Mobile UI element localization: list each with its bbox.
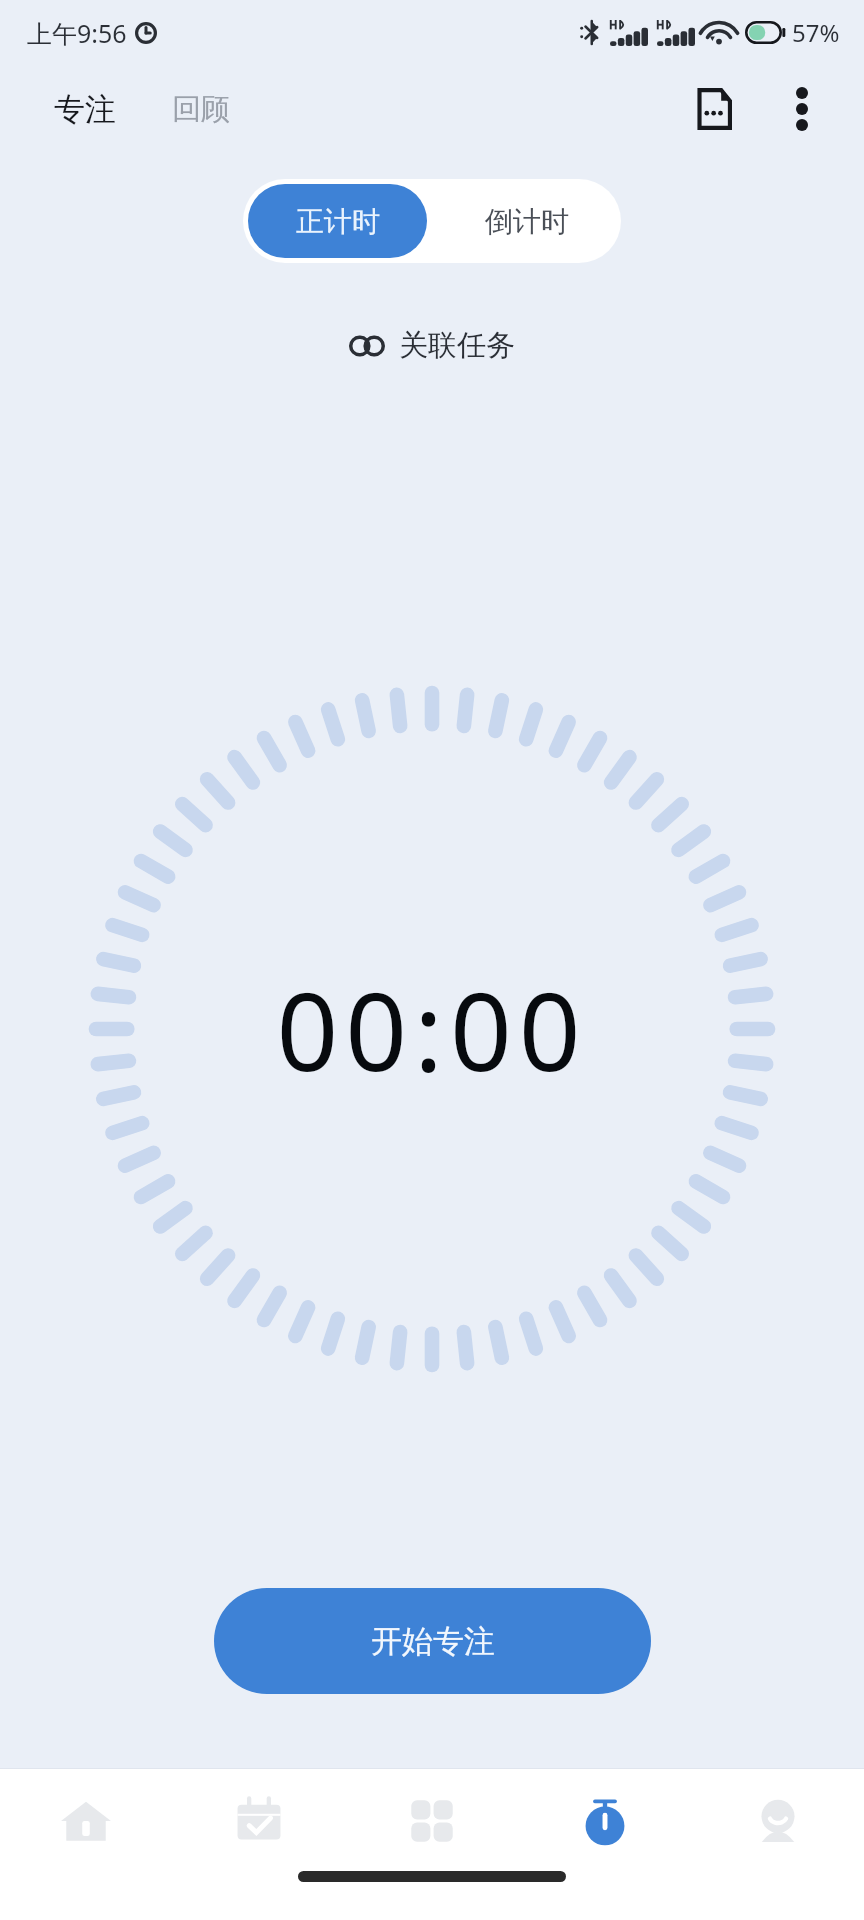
button[interactable]: Home [0,1769,172,1873]
button[interactable]: 开始专注 [214,1588,651,1694]
staticText: 倒计时 [485,204,569,239]
button[interactable]: Apps [345,1769,518,1873]
staticText: 关联任务 [399,327,515,364]
button[interactable]: Notes [682,77,746,141]
staticText: 专注 [54,90,116,129]
button[interactable]: 专注 [50,84,120,135]
staticText: 回顾 [172,91,230,128]
staticText: 正计时 [296,204,380,239]
button[interactable]: 倒计时 [432,179,621,263]
button[interactable]: 回顾 [168,85,234,134]
button[interactable]: Focus timer [518,1769,691,1873]
button[interactable]: Profile [691,1769,864,1873]
button[interactable]: Calendar [172,1769,345,1873]
staticText: 上午9:56 [27,16,127,50]
staticText: 开始专注 [371,1622,495,1661]
button[interactable]: 关联任务 [333,317,531,374]
staticText: 00:00 [276,956,588,1103]
button[interactable]: More options [770,77,834,141]
staticText: 57% [792,16,840,49]
button[interactable]: 正计时 [248,184,427,258]
